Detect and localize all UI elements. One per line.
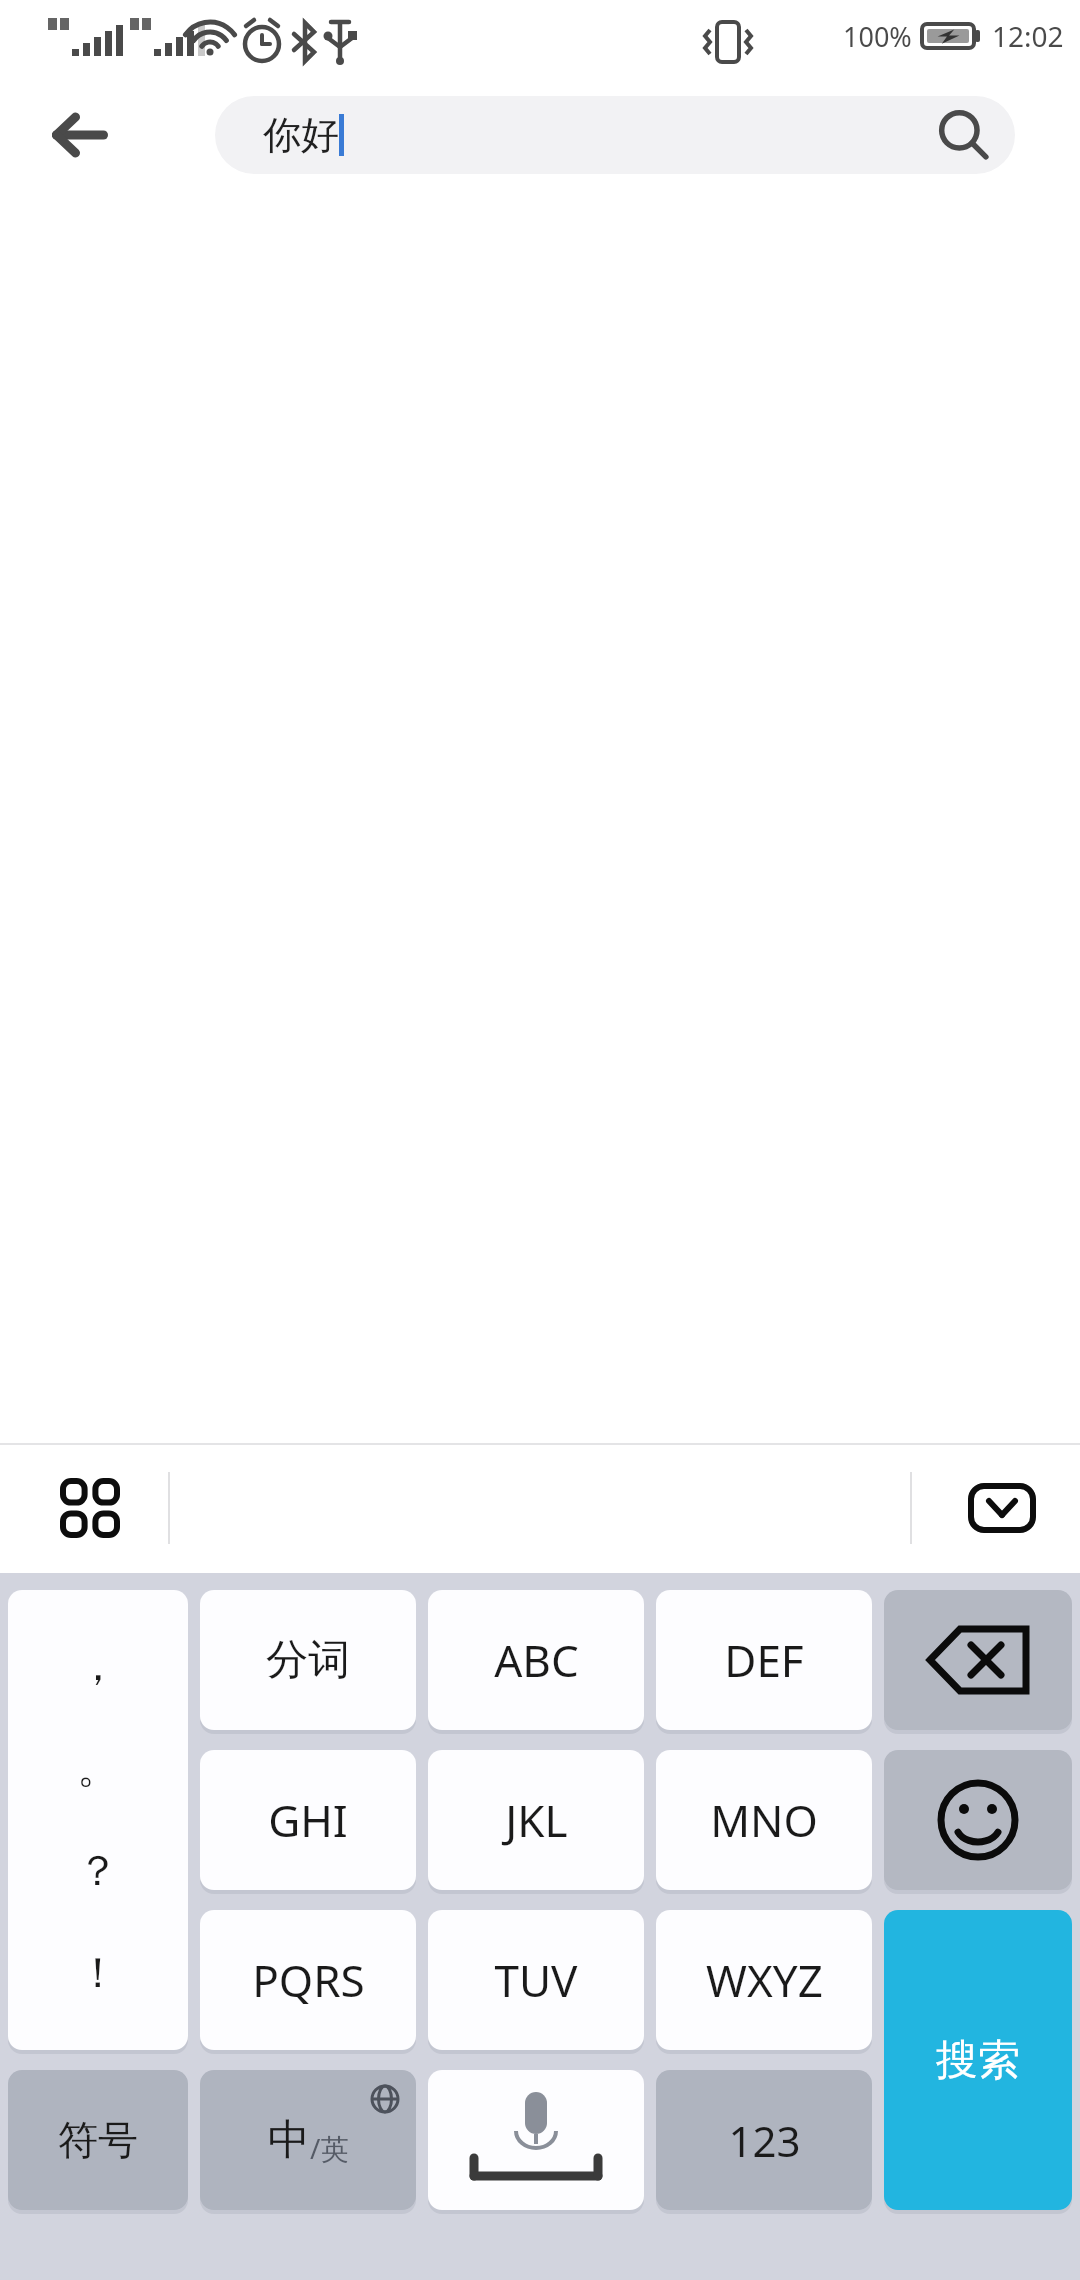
button[interactable]: Punctuation: [8, 1590, 188, 2050]
staticText: 符号: [58, 2115, 138, 2165]
staticText: GHI: [268, 1790, 348, 1850]
button[interactable]: 123: [656, 2070, 872, 2210]
staticText: 中: [268, 2114, 310, 2167]
staticText: ，: [77, 1640, 119, 1693]
staticText: MNO: [710, 1790, 818, 1850]
staticText: ！: [77, 1947, 119, 2000]
button[interactable]: JKL: [428, 1750, 644, 1890]
staticText: 123: [728, 2112, 801, 2169]
button[interactable]: 符号: [8, 2070, 188, 2210]
button[interactable]: 你好: [215, 96, 1015, 174]
button[interactable]: PQRS: [200, 1910, 416, 2050]
staticText: WXYZ: [706, 1950, 823, 2010]
staticText: /: [310, 2129, 321, 2167]
staticText: ？: [77, 1845, 119, 1898]
button[interactable]: ABC: [428, 1590, 644, 1730]
staticText: DEF: [724, 1630, 804, 1690]
staticText: JKL: [505, 1790, 568, 1850]
staticText: 分词: [266, 1634, 350, 1687]
button[interactable]: Delete: [884, 1590, 1072, 1730]
button[interactable]: Space: [428, 2070, 644, 2210]
staticText: PQRS: [252, 1950, 365, 2010]
staticText: 12:02: [992, 17, 1064, 55]
staticText: 。: [77, 1742, 119, 1795]
button[interactable]: MNO: [656, 1750, 872, 1890]
staticText: 搜索: [936, 2034, 1020, 2087]
button[interactable]: Keyboard layouts: [40, 1458, 140, 1558]
button[interactable]: Back: [30, 85, 130, 185]
button[interactable]: Emoji: [884, 1750, 1072, 1890]
button[interactable]: GHI: [200, 1750, 416, 1890]
button[interactable]: DEF: [656, 1590, 872, 1730]
staticText: 你好: [263, 111, 339, 159]
button[interactable]: 中: [200, 2070, 416, 2210]
staticText: ABC: [494, 1630, 579, 1690]
staticText: TUV: [494, 1950, 578, 2010]
staticText: 100%: [843, 18, 912, 55]
button[interactable]: 搜索: [884, 1910, 1072, 2210]
button[interactable]: WXYZ: [656, 1910, 872, 2050]
button[interactable]: TUV: [428, 1910, 644, 2050]
button[interactable]: 分词: [200, 1590, 416, 1730]
button[interactable]: Search: [919, 96, 1007, 174]
button[interactable]: Hide keyboard: [952, 1458, 1052, 1558]
staticText: 英: [321, 2132, 349, 2167]
